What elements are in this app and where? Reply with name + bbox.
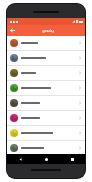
button[interactable]	[7, 141, 85, 154]
button[interactable]	[7, 81, 85, 95]
button[interactable]: Back	[7, 154, 33, 164]
button[interactable]: Recent apps	[59, 154, 85, 164]
button[interactable]: Home	[33, 154, 59, 164]
button[interactable]	[7, 51, 85, 65]
button[interactable]: Back	[7, 25, 18, 36]
staticText: முகப்பு	[42, 29, 54, 33]
button[interactable]	[7, 36, 85, 50]
button[interactable]	[7, 126, 85, 140]
button[interactable]	[7, 111, 85, 125]
button[interactable]	[7, 96, 85, 110]
button[interactable]	[7, 66, 85, 80]
